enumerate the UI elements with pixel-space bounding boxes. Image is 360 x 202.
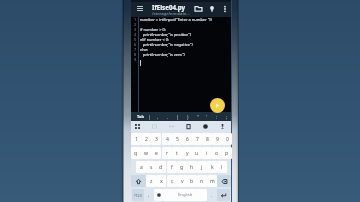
- button[interactable]: Backspace: [217, 175, 231, 187]
- button[interactable]: English: [163, 189, 207, 201]
- button[interactable]: 8: [202, 133, 212, 145]
- staticText: 8: [134, 52, 137, 57]
- staticText: ): [187, 114, 189, 120]
- staticText: y: [186, 150, 189, 157]
- staticText: 8: [206, 136, 209, 143]
- button[interactable]: ": [193, 112, 203, 121]
- button[interactable]: x: [156, 175, 166, 187]
- button[interactable]: i: [202, 147, 212, 159]
- button[interactable]: Clipboard: [181, 121, 195, 132]
- button[interactable]: ': [202, 112, 212, 121]
- staticText: j: [201, 164, 203, 171]
- button[interactable]: l: [217, 161, 227, 173]
- button[interactable]: Voice input: [215, 121, 229, 132]
- staticText: 0: [226, 136, 229, 143]
- button[interactable]: |: [144, 112, 154, 121]
- staticText: .: [167, 114, 169, 120]
- button[interactable]: d: [156, 161, 166, 173]
- button[interactable]: m: [207, 175, 217, 187]
- button[interactable]: g: [177, 161, 187, 173]
- button[interactable]: 5: [172, 133, 182, 145]
- button[interactable]: j: [197, 161, 207, 173]
- staticText: q: [134, 150, 138, 157]
- staticText: h: [190, 164, 194, 171]
- staticText: elif number < 0:: [140, 37, 170, 42]
- staticText: print(number,"is negative"): [140, 42, 193, 47]
- button[interactable]: 9: [212, 133, 222, 145]
- staticText: v: [181, 178, 184, 185]
- button[interactable]: h: [187, 161, 197, 173]
- staticText: r: [166, 150, 169, 157]
- button[interactable]: s: [146, 161, 156, 173]
- staticText: print(number,"is positive"): [140, 32, 192, 37]
- button[interactable]: Sticker: [164, 121, 178, 132]
- button[interactable]: u: [192, 147, 202, 159]
- button[interactable]: Enter: [217, 189, 230, 201]
- button[interactable]: o: [212, 147, 222, 159]
- button[interactable]: Apps: [130, 121, 144, 132]
- button[interactable]: p: [222, 147, 232, 159]
- button[interactable]: Change language: [154, 189, 163, 201]
- staticText: :: [216, 114, 218, 120]
- button[interactable]: y: [182, 147, 192, 159]
- staticText: k: [211, 164, 214, 171]
- staticText: d: [159, 164, 163, 171]
- staticText: ,: [157, 114, 159, 120]
- staticText: 9: [216, 136, 219, 143]
- button[interactable]: t: [172, 147, 182, 159]
- staticText: 5: [176, 136, 179, 143]
- staticText: 2: [134, 22, 137, 27]
- button[interactable]: a: [136, 161, 146, 173]
- staticText: else:: [140, 47, 149, 52]
- staticText: 3: [155, 136, 158, 143]
- button[interactable]: z: [146, 175, 156, 187]
- button[interactable]: 3: [151, 133, 161, 145]
- button[interactable]: q: [131, 147, 141, 159]
- button[interactable]: ;: [222, 112, 232, 121]
- button[interactable]: n: [197, 175, 207, 187]
- button[interactable]: 0: [222, 133, 232, 145]
- button[interactable]: Menu: [134, 0, 146, 17]
- button[interactable]: Hint: [207, 0, 217, 17]
- staticText: e: [155, 150, 158, 157]
- button[interactable]: ?123: [132, 189, 144, 201]
- button[interactable]: 7: [192, 133, 202, 145]
- button[interactable]: Period: [208, 188, 215, 202]
- button[interactable]: :: [212, 112, 222, 121]
- button[interactable]: ,: [153, 112, 163, 121]
- button[interactable]: e: [151, 147, 161, 159]
- button[interactable]: b: [187, 175, 197, 187]
- button[interactable]: Tab: [134, 112, 147, 121]
- button[interactable]: IfElse04.py: [152, 3, 214, 17]
- staticText: 6: [134, 42, 137, 47]
- button[interactable]: r: [162, 147, 172, 159]
- button[interactable]: (: [173, 112, 183, 121]
- button[interactable]: 4: [162, 133, 172, 145]
- button[interactable]: Run: [210, 98, 225, 113]
- button[interactable]: ): [183, 112, 193, 121]
- button[interactable]: 2: [141, 133, 151, 145]
- staticText: i: [206, 150, 208, 157]
- button[interactable]: 1: [131, 133, 141, 145]
- button[interactable]: w: [141, 147, 151, 159]
- button[interactable]: 6: [182, 133, 192, 145]
- staticText: 1: [134, 17, 137, 22]
- staticText: ': [206, 114, 208, 120]
- staticText: ": [197, 114, 199, 120]
- button[interactable]: Open folder: [193, 0, 204, 17]
- button[interactable]: .: [163, 112, 173, 121]
- button[interactable]: GIF: [147, 121, 161, 132]
- button[interactable]: More options: [220, 0, 229, 17]
- staticText: g: [180, 164, 184, 171]
- button[interactable]: Shift: [131, 175, 146, 187]
- button[interactable]: v: [177, 175, 187, 187]
- button[interactable]: Theme: [198, 121, 212, 132]
- staticText: a: [140, 164, 143, 171]
- button[interactable]: c: [167, 175, 177, 187]
- button[interactable]: f: [167, 161, 177, 173]
- staticText: if number > 0:: [140, 27, 166, 32]
- button[interactable]: k: [207, 161, 217, 173]
- button[interactable]: Comma: [145, 188, 153, 202]
- staticText: w: [144, 150, 149, 157]
- staticText: 6: [186, 136, 189, 143]
